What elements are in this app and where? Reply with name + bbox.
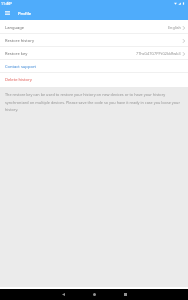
- button[interactable]: Back: [57, 289, 69, 300]
- staticText: Delete history: [5, 77, 32, 83]
- staticText: Restore key: [5, 51, 28, 57]
- staticText: Contact support: [5, 64, 37, 70]
- staticText: The restore key can be used to restore y…: [5, 92, 184, 112]
- staticText: Language: [5, 25, 25, 31]
- staticText: 7ThsG47G7PPtG2kkRwb3: [136, 51, 181, 56]
- button[interactable]: Recent apps: [119, 289, 131, 300]
- button[interactable]: Language: [0, 21, 188, 34]
- button[interactable]: Delete history: [0, 73, 188, 86]
- staticText: Restore history: [5, 38, 35, 44]
- staticText: Profile: [18, 10, 32, 16]
- staticText: 11:44: [1, 1, 11, 6]
- button[interactable]: Contact support: [0, 60, 188, 73]
- button[interactable]: Home: [88, 289, 100, 300]
- button[interactable]: Open navigation menu: [2, 8, 12, 18]
- button[interactable]: Restore key: [0, 47, 188, 60]
- button[interactable]: Restore history: [0, 34, 188, 47]
- staticText: English: [168, 25, 181, 30]
